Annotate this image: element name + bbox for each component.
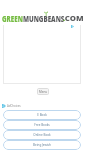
- button[interactable]: AdChoices: [2, 104, 21, 108]
- staticText: AdChoices: [7, 104, 21, 108]
- button[interactable]: Free Books: [3, 120, 81, 130]
- button[interactable]: E Book: [3, 110, 81, 120]
- button[interactable]: Being Jewish: [3, 140, 81, 150]
- staticText: Free Books: [34, 123, 50, 127]
- button[interactable]: AdChoices: [71, 25, 74, 28]
- staticText: Online Book: [33, 133, 51, 137]
- button[interactable]: Menu: [37, 88, 49, 95]
- staticText: GREENMUNGBEANS: [2, 13, 65, 24]
- staticText: E Book: [37, 113, 47, 117]
- button[interactable]: Online Book: [3, 130, 81, 140]
- staticText: Menu: [39, 90, 48, 94]
- staticText: Being Jewish: [33, 143, 51, 147]
- staticText: .COM: [63, 14, 84, 24]
